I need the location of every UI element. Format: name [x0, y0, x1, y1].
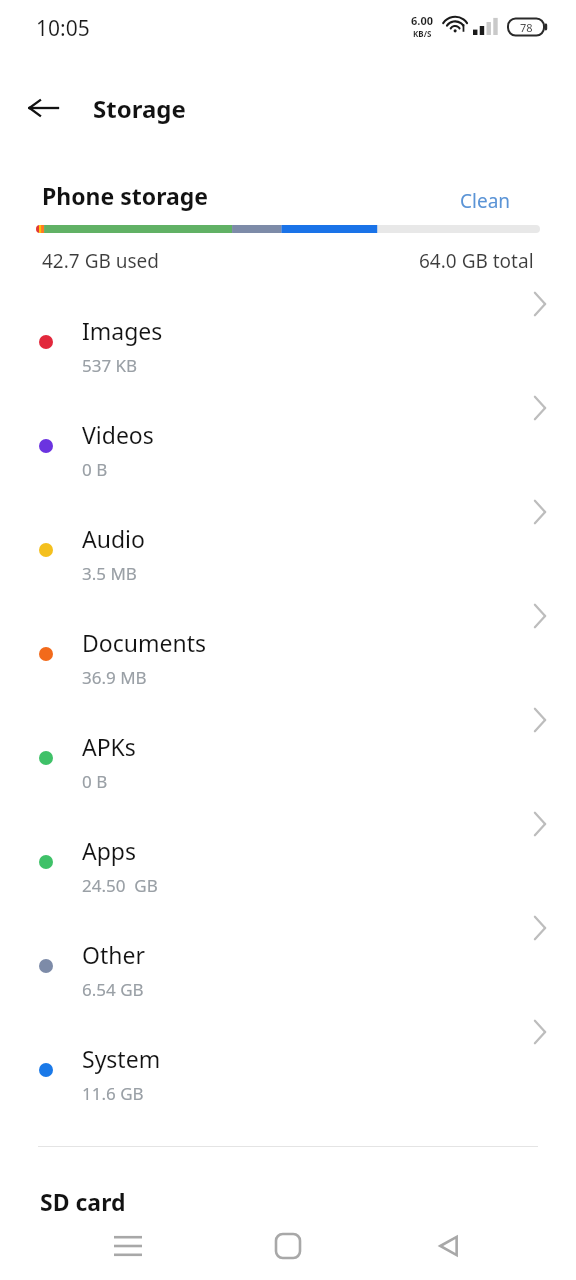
- staticText: System: [82, 1043, 161, 1074]
- staticText: APKs: [82, 731, 136, 762]
- staticText: Storage: [93, 92, 186, 125]
- button[interactable]: Back: [20, 85, 66, 131]
- staticText: Videos: [82, 419, 154, 450]
- button[interactable]: Recent apps: [96, 1214, 160, 1278]
- staticText: 6.00: [411, 13, 433, 28]
- staticText: 42.7 GB used: [42, 248, 160, 274]
- staticText: 11.6 GB: [82, 1082, 144, 1105]
- staticText: 36.9 MB: [82, 666, 147, 689]
- button[interactable]: Other: [0, 914, 576, 1018]
- button[interactable]: Images: [0, 290, 576, 394]
- staticText: Images: [82, 315, 163, 346]
- staticText: 6.54 GB: [82, 978, 144, 1001]
- button[interactable]: Apps: [0, 810, 576, 914]
- staticText: 0 B: [82, 770, 108, 793]
- button[interactable]: Audio: [0, 498, 576, 602]
- staticText: Documents: [82, 627, 206, 658]
- staticText: 3.5 MB: [82, 562, 137, 585]
- button[interactable]: Back: [416, 1214, 480, 1278]
- staticText: 10:05: [36, 14, 90, 43]
- staticText: Apps: [82, 835, 137, 866]
- staticText: 537 KB: [82, 354, 138, 377]
- staticText: 64.0 GB total: [419, 248, 534, 274]
- staticText: 0 B: [82, 458, 108, 481]
- button[interactable]: Clean: [460, 184, 550, 218]
- staticText: Other: [82, 939, 145, 970]
- staticText: Audio: [82, 523, 145, 554]
- button[interactable]: APKs: [0, 706, 576, 810]
- staticText: KB/S: [413, 28, 432, 39]
- staticText: 24.50 GB: [82, 874, 158, 897]
- staticText: Clean: [460, 188, 511, 214]
- staticText: SD card: [40, 1186, 126, 1217]
- button[interactable]: Videos: [0, 394, 576, 498]
- button[interactable]: Home: [256, 1214, 320, 1278]
- staticText: 78: [520, 20, 533, 35]
- staticText: Phone storage: [42, 180, 209, 211]
- button[interactable]: Documents: [0, 602, 576, 706]
- button[interactable]: System: [0, 1018, 576, 1122]
